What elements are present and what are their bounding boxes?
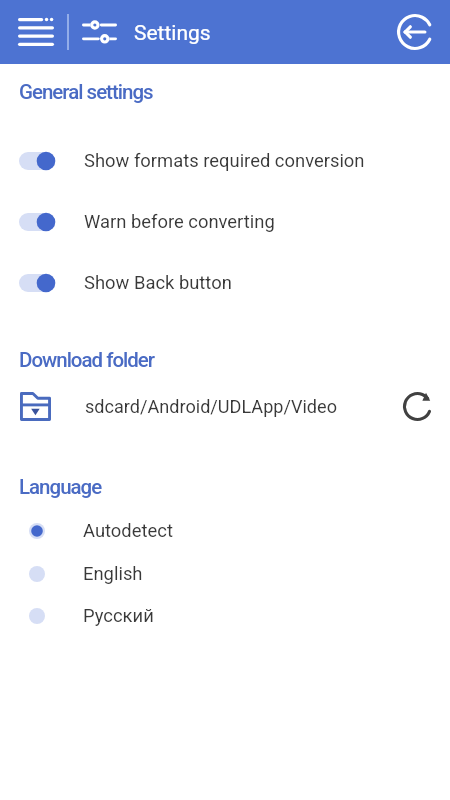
staticText: Русский [83,605,154,627]
staticText: General settings [19,80,153,104]
button[interactable]: Русский [0,595,450,637]
button[interactable]: Refresh [395,384,439,428]
button[interactable]: Filters [75,12,124,52]
button[interactable]: Autodetect [0,510,450,552]
button[interactable]: Exit [390,8,439,56]
button[interactable]: Menu [8,8,64,56]
button[interactable]: sdcard/Android/UDLApp/Video [0,380,450,432]
staticText: Settings [134,21,211,46]
staticText: Language [19,475,102,499]
staticText: Download folder [19,348,155,372]
staticText: Show Back button [84,272,232,294]
button[interactable]: English [0,553,450,595]
button[interactable]: Show Back button [0,257,450,309]
staticText: Warn before converting [84,211,275,233]
staticText: Autodetect [83,520,173,542]
staticText: Show formats required conversion [84,150,365,172]
staticText: sdcard/Android/UDLApp/Video [85,396,337,417]
staticText: English [83,563,143,585]
button[interactable]: Warn before converting [0,196,450,248]
button[interactable]: Show formats required conversion [0,135,450,187]
